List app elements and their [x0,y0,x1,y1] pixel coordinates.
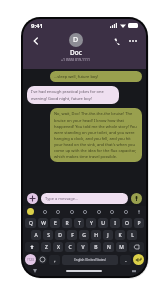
staticText: C [68,244,72,251]
button[interactable]: Type a message... [41,193,128,204]
staticText: R [65,220,69,227]
button[interactable]: O [122,218,132,228]
button[interactable]: , [49,255,60,265]
button[interactable]: K [115,230,125,240]
staticText: D [73,35,79,45]
button[interactable]: Assistant [27,208,34,215]
staticText: Type a message... [45,196,79,201]
staticText: F [71,232,74,239]
staticText: X [57,244,60,251]
button[interactable]: L [127,230,137,240]
button[interactable]: Backspace [129,242,144,252]
button[interactable]: P [134,218,144,228]
button[interactable]: H [91,230,101,240]
button[interactable]: Y [86,218,96,228]
staticText: T [78,220,81,227]
button[interactable]: . [120,255,131,265]
button[interactable]: A [31,230,41,240]
staticText: N [107,244,111,251]
button[interactable]: R [62,218,72,228]
button[interactable]: No, wait, Doc! The-the-the-the bruise! T… [50,108,142,162]
button[interactable]: Enter [133,254,144,265]
staticText: H [94,232,98,239]
staticText: . [125,257,127,264]
staticText: W [41,220,46,227]
staticText: E [54,220,57,227]
button[interactable]: B [90,242,101,252]
button[interactable]: W [38,218,48,228]
staticText: +1 (555) 019-1111 [61,57,91,62]
staticText: Z [45,244,48,251]
button[interactable]: ?123 [25,254,36,265]
button[interactable]: F [67,230,77,240]
button[interactable]: Emoji [38,255,47,264]
staticText: P [137,220,141,227]
button[interactable]: Tool 2 [68,208,75,215]
staticText: ...sleep well, future boy! [54,74,99,79]
staticText: K [118,232,122,239]
button[interactable]: Tool 4 [95,208,102,215]
staticText: ?123 [27,258,34,262]
button[interactable]: English (United States) [62,255,118,265]
staticText: A [34,232,38,239]
button[interactable]: Tool 5 [108,208,115,215]
button[interactable]: Microphone [135,208,142,215]
button[interactable]: Tool 1 [54,208,61,215]
button[interactable]: Back [28,33,44,49]
button[interactable]: I [110,218,120,228]
staticText: J [107,232,109,239]
button[interactable]: S [43,230,53,240]
button[interactable]: Call [109,33,125,49]
staticText: S [47,232,50,239]
button[interactable]: D [55,230,65,240]
staticText: B [94,244,98,251]
staticText: English (United States) [74,258,106,262]
button[interactable]: Z [41,242,51,252]
staticText: U [101,220,105,227]
button[interactable]: Shift [25,242,39,252]
staticText: I've had enough practical jokes for one … [31,89,115,101]
staticText: No, wait, Doc! The-the-the-the bruise! T… [54,111,138,159]
staticText: Q [29,220,33,227]
button[interactable]: U [98,218,108,228]
staticText: 9:41 [31,22,43,30]
button[interactable]: T [74,218,84,228]
button[interactable]: E [50,218,60,228]
button[interactable]: Q [25,218,36,228]
staticText: I [114,220,116,227]
button[interactable]: D [61,33,91,62]
button[interactable]: N [103,242,114,252]
staticText: O [125,220,129,227]
button[interactable]: I've had enough practical jokes for one … [27,86,119,104]
staticText: L [131,232,134,239]
button[interactable]: ...sleep well, future boy! [50,71,142,82]
button[interactable]: C [65,242,75,252]
button[interactable]: Tool 0 [41,208,48,215]
button[interactable]: Voice message [131,193,142,204]
staticText: V [81,244,85,251]
button[interactable]: X [53,242,63,252]
button[interactable]: Add attachment [27,193,38,204]
button[interactable]: J [103,230,113,240]
button[interactable]: G [79,230,89,240]
staticText: Y [90,220,93,227]
staticText: G [82,232,86,239]
button[interactable]: V [77,242,88,252]
staticText: M [119,244,124,251]
staticText: , [54,257,56,264]
staticText: Doc [70,48,82,57]
staticText: D [58,232,62,239]
button[interactable]: Tool 3 [81,208,88,215]
button[interactable]: Tool 6 [122,208,129,215]
button[interactable]: M [116,242,127,252]
button[interactable]: More options [125,33,141,49]
